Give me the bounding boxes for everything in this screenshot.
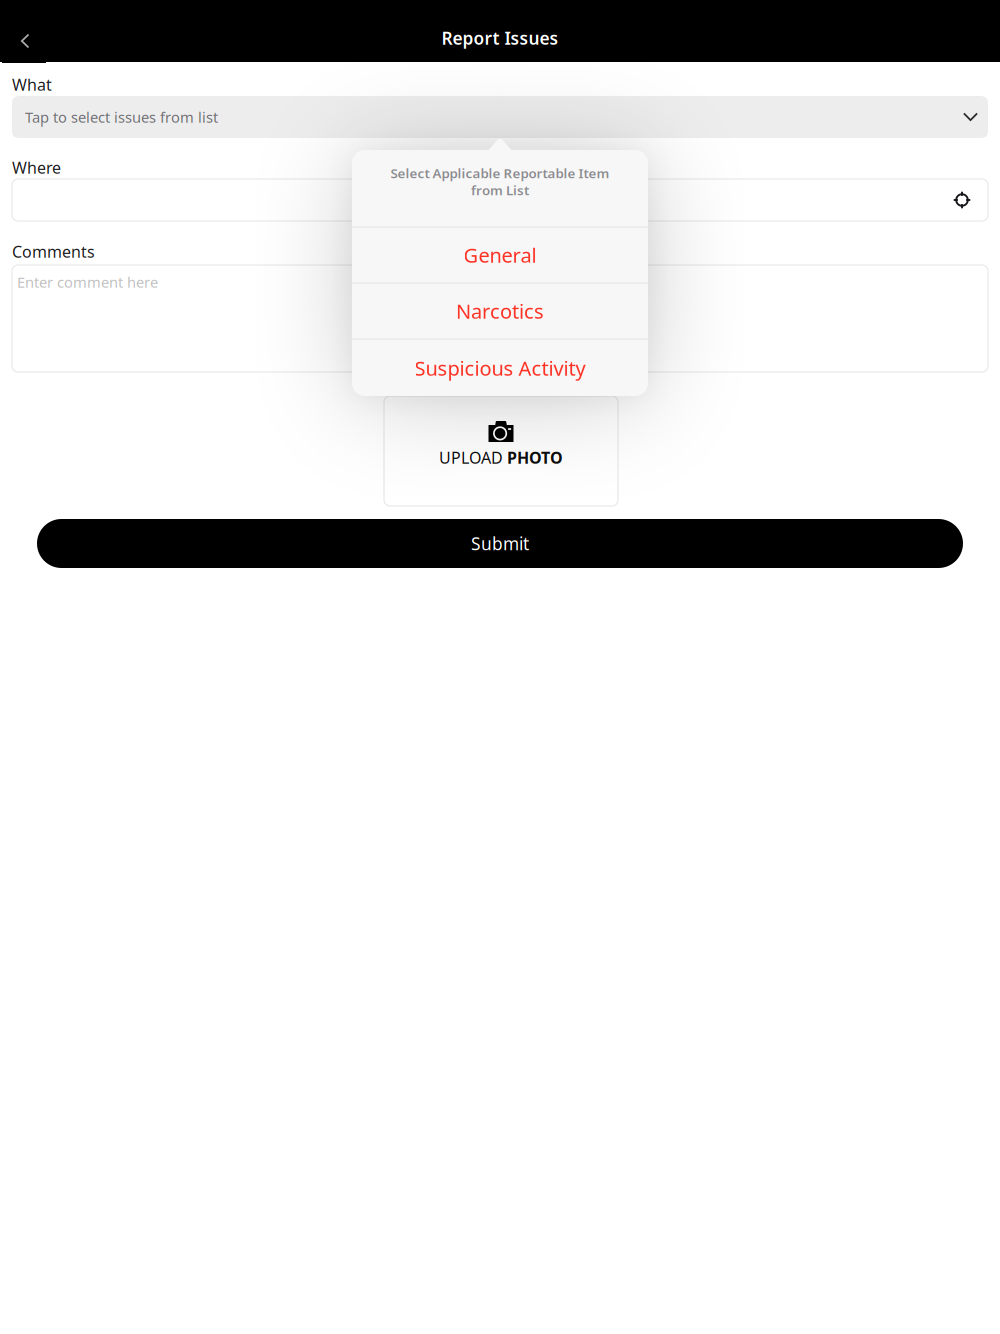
button[interactable]: Tap to select issues from list bbox=[12, 96, 988, 138]
staticText: from List bbox=[471, 181, 529, 199]
button[interactable]: Narcotics bbox=[352, 283, 648, 338]
staticText: Select Applicable Reportable Item bbox=[390, 164, 609, 182]
staticText: What bbox=[12, 74, 52, 95]
button[interactable]: Back bbox=[2, 19, 46, 63]
staticText: Tap to select issues from list bbox=[25, 107, 218, 127]
button[interactable]: Suspicious Activity bbox=[352, 339, 648, 396]
staticText: Report Issues bbox=[441, 26, 558, 49]
staticText: Where bbox=[12, 157, 61, 178]
staticText: Comments bbox=[12, 241, 95, 262]
staticText: Submit bbox=[471, 532, 529, 555]
button[interactable]: Submit bbox=[37, 519, 963, 568]
staticText: Enter comment here bbox=[17, 272, 158, 292]
button[interactable]: General bbox=[352, 227, 648, 282]
button[interactable]: Use current location bbox=[945, 183, 979, 217]
staticText: General bbox=[463, 242, 536, 268]
staticText: UPLOAD PHOTO bbox=[439, 447, 563, 468]
staticText: Narcotics bbox=[456, 298, 544, 324]
staticText: Suspicious Activity bbox=[414, 355, 585, 381]
button[interactable]: UPLOAD PHOTO bbox=[384, 396, 618, 506]
